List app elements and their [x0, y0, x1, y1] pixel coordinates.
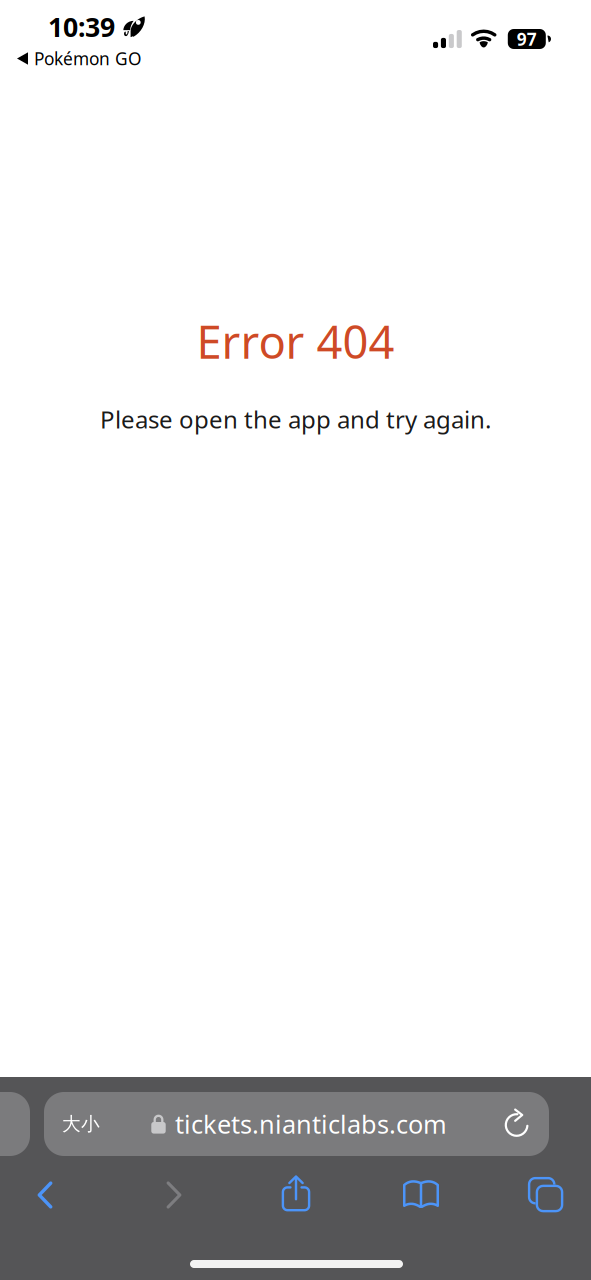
staticText: tickets.nianticlabs.com [175, 1107, 447, 1141]
staticText: Pokémon GO [34, 47, 142, 70]
staticText: 10:39 [48, 9, 115, 44]
button[interactable]: tickets.nianticlabs.com [139, 1092, 459, 1156]
button[interactable]: Forward [131, 1167, 217, 1223]
button[interactable]: Share [253, 1162, 339, 1218]
staticText: Please open the app and try again. [100, 403, 491, 435]
staticText: 97 [517, 27, 537, 50]
button[interactable]: Bookmarks [378, 1165, 464, 1221]
button[interactable]: Reload [489, 1092, 543, 1156]
button[interactable]: Back [2, 1167, 88, 1223]
staticText: 大小 [62, 1112, 100, 1135]
button[interactable]: Tabs [500, 1164, 586, 1220]
button[interactable]: Pokémon GO [17, 47, 142, 70]
staticText: Error 404 [196, 311, 394, 371]
button[interactable]: Page zoom [52, 1092, 110, 1156]
